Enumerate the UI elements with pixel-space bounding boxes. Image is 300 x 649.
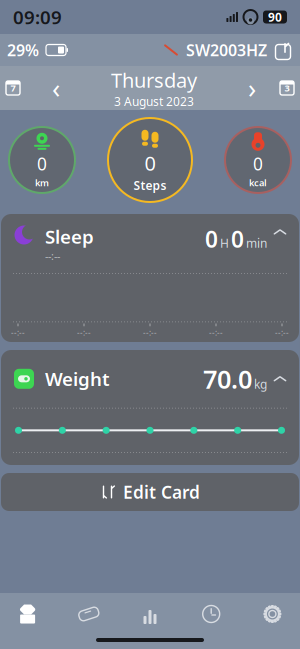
staticText: min [246, 235, 267, 251]
staticText: km [35, 176, 49, 189]
button[interactable]: Next day [241, 75, 263, 101]
staticText: 0 [231, 224, 244, 254]
staticText: Thursday [111, 67, 197, 93]
staticText: 3 August 2023 [114, 93, 194, 109]
staticText: ‹ [52, 70, 60, 106]
staticText: 29% [7, 39, 39, 61]
staticText: Steps [133, 177, 166, 193]
button[interactable]: History [181, 597, 242, 631]
staticText: 0 [205, 224, 218, 254]
staticText: kg [254, 376, 267, 392]
staticText: 90 [268, 9, 282, 25]
staticText: SW2003HZ [186, 39, 267, 61]
staticText: kcal [249, 176, 267, 189]
staticText: Sleep [45, 224, 94, 249]
staticText: › [248, 70, 256, 106]
button[interactable]: Pick date [279, 80, 295, 96]
button[interactable]: Settings [242, 597, 300, 631]
staticText: --:-- [45, 249, 60, 263]
staticText: --:-- [209, 327, 223, 338]
staticText: 3 [284, 82, 289, 94]
staticText: --:-- [143, 327, 157, 338]
staticText: 0 [144, 150, 155, 176]
button[interactable]: Activity [58, 597, 119, 631]
button[interactable]: Share [273, 40, 293, 60]
staticText: Weight [45, 366, 110, 391]
staticText: 0 [253, 152, 263, 175]
staticText: H [220, 235, 229, 251]
button[interactable]: Steps 0 [108, 118, 192, 202]
staticText: 09:09 [13, 5, 62, 29]
staticText: --:-- [275, 327, 289, 338]
staticText: 0 [37, 152, 47, 175]
staticText: 7 [10, 82, 15, 94]
button[interactable]: Home [0, 597, 58, 631]
button[interactable]: Weekly view [5, 80, 21, 96]
button[interactable]: Previous day [45, 75, 67, 101]
button[interactable]: Weight [1, 350, 299, 465]
staticText: 70.0 [203, 362, 252, 396]
staticText: --:-- [77, 327, 91, 338]
button[interactable]: Edit Card [1, 473, 299, 511]
staticText: Edit Card [123, 480, 200, 503]
button[interactable]: Sleep [1, 214, 299, 342]
staticText: --:-- [11, 327, 25, 338]
button[interactable]: Statistics [119, 597, 181, 631]
button[interactable]: km 0 [9, 127, 75, 193]
button[interactable]: kcal 0 [225, 127, 291, 193]
